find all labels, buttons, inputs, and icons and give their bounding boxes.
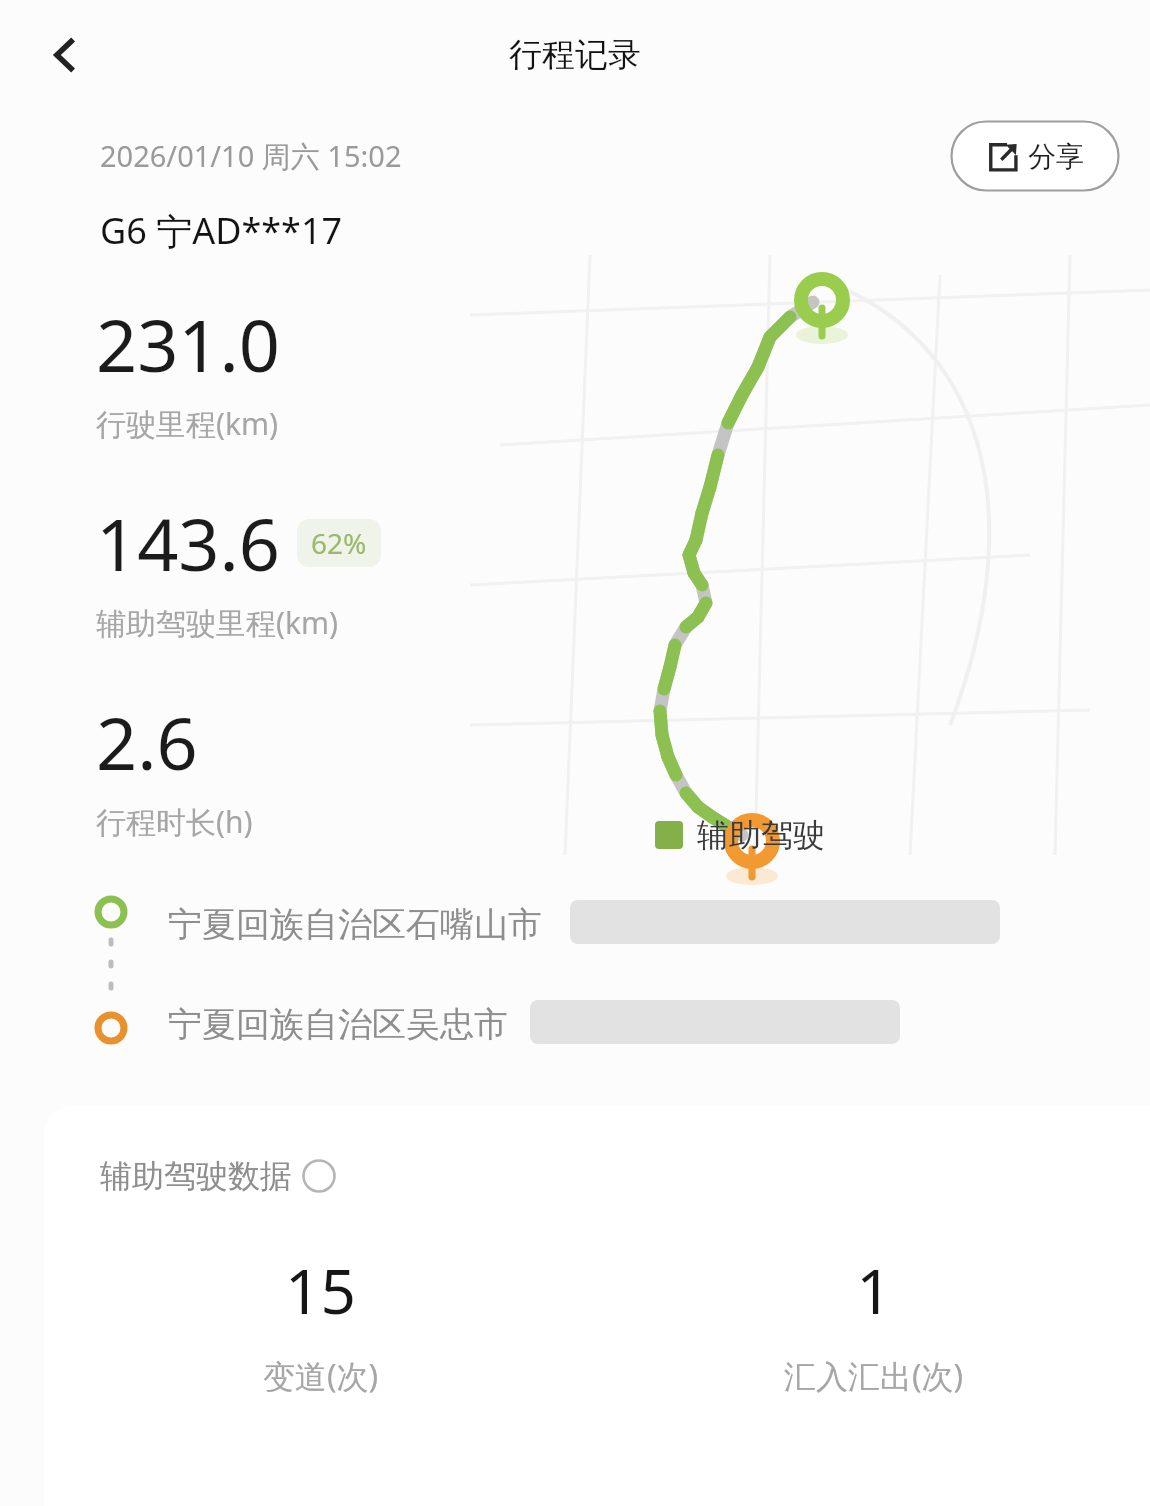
staticText: 231.0: [96, 295, 281, 393]
staticText: 62%: [311, 524, 367, 562]
staticText: 15: [285, 1248, 356, 1332]
staticText: 行驶里程(km): [96, 403, 279, 444]
staticText: 辅助驾驶: [697, 815, 825, 855]
button[interactable]: 宁夏回族自治区吴忠市: [0, 984, 1150, 1064]
staticText: 行程时长(h): [96, 801, 253, 842]
staticText: 宁夏回族自治区吴忠市: [168, 1003, 508, 1046]
staticText: 变道(次): [263, 1354, 379, 1398]
staticText: G6 宁AD***17: [100, 206, 343, 255]
staticText: 2.6: [96, 693, 198, 791]
button[interactable]: 辅助驾驶数据: [100, 1156, 336, 1196]
staticText: 汇入汇出(次): [784, 1354, 964, 1398]
staticText: 1: [856, 1248, 892, 1332]
button[interactable]: 分享: [950, 120, 1120, 192]
staticText: 分享: [1028, 139, 1084, 174]
staticText: 143.6: [96, 494, 281, 592]
other: Help: [302, 1159, 336, 1193]
staticText: 宁夏回族自治区石嘴山市: [168, 903, 542, 946]
button[interactable]: Back: [30, 20, 100, 90]
staticText: 2026/01/10 周六 15:02: [100, 136, 402, 176]
staticText: 辅助驾驶里程(km): [96, 602, 339, 643]
staticText: 行程记录: [509, 34, 641, 76]
button[interactable]: 宁夏回族自治区石嘴山市: [0, 884, 1150, 964]
button[interactable]: [950, 120, 1120, 192]
staticText: 辅助驾驶数据: [100, 1156, 292, 1196]
